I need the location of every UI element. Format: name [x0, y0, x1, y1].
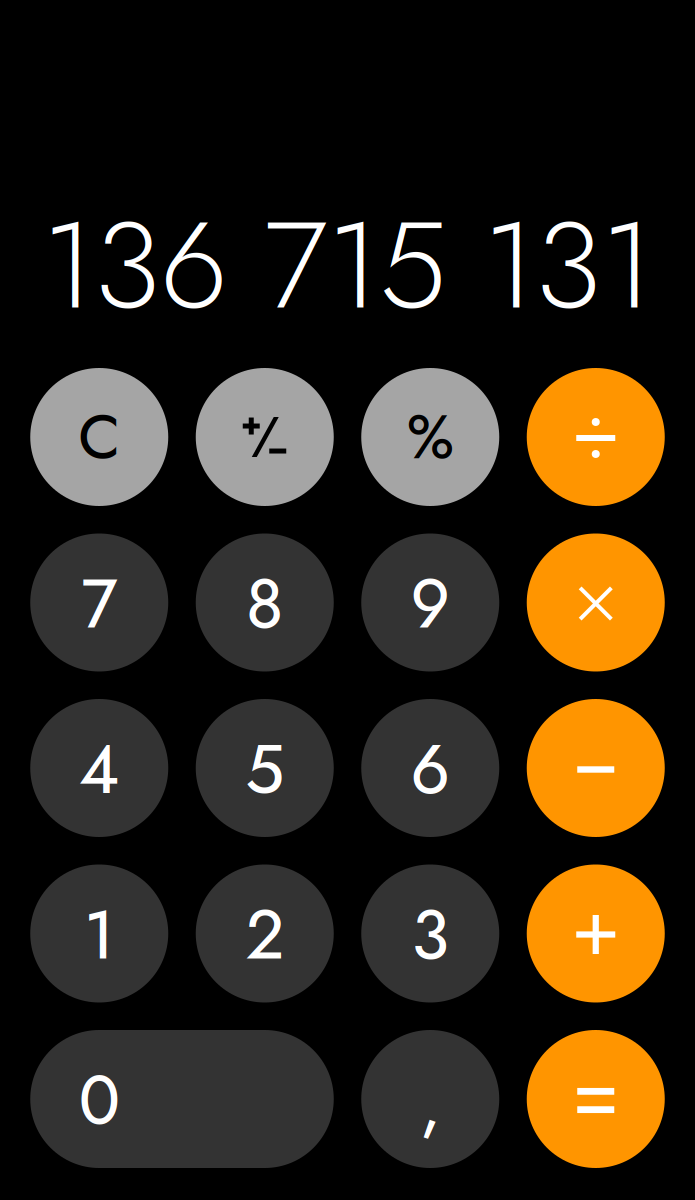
button[interactable]: 7	[30, 533, 168, 671]
button[interactable]: Multiply	[527, 533, 665, 671]
button[interactable]: 3	[361, 864, 499, 1002]
staticText: 3	[411, 886, 449, 984]
button[interactable]: Plus	[527, 864, 665, 1002]
button[interactable]: Comma	[361, 1030, 499, 1168]
button[interactable]: Divide	[527, 368, 665, 506]
staticText: C	[78, 393, 120, 481]
staticText: 4	[79, 720, 120, 818]
button[interactable]: Percent	[361, 368, 499, 506]
button[interactable]: 5	[196, 699, 334, 837]
staticText: %	[407, 393, 454, 481]
button[interactable]: 2	[196, 864, 334, 1002]
staticText: 2	[245, 886, 284, 984]
staticText: 5	[245, 720, 284, 818]
staticText: ,	[420, 1054, 441, 1153]
staticText: 136 715 131	[42, 178, 653, 353]
staticText: 7	[81, 555, 117, 653]
button[interactable]: 4	[30, 699, 168, 837]
button[interactable]: Equals	[527, 1030, 665, 1168]
staticText: 8	[246, 555, 284, 653]
button[interactable]: 8	[196, 533, 334, 671]
staticText: 6	[410, 720, 450, 818]
button[interactable]: 6	[361, 699, 499, 837]
button[interactable]: 1	[30, 864, 168, 1002]
staticText: 0	[79, 1051, 120, 1149]
button[interactable]: Minus	[527, 699, 665, 837]
button[interactable]: Plus minus	[196, 368, 334, 506]
staticText: 9	[410, 555, 450, 653]
button[interactable]: 0	[30, 1030, 334, 1168]
button[interactable]: Clear	[30, 368, 168, 506]
button[interactable]: 9	[361, 533, 499, 671]
staticText: 1	[84, 886, 115, 984]
